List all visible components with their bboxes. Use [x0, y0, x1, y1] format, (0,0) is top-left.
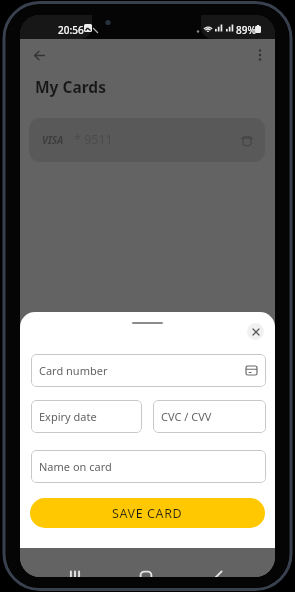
staticText: 20:56: [58, 23, 84, 37]
staticText: Card number: [39, 363, 108, 378]
button[interactable]: Back: [25, 41, 53, 69]
button[interactable]: CVC / CVV: [153, 400, 266, 433]
button[interactable]: Card number: [31, 354, 266, 387]
button[interactable]: Home: [133, 564, 159, 577]
staticText: 89%: [236, 23, 256, 37]
button[interactable]: Expiry date: [31, 400, 142, 433]
button[interactable]: SAVE CARD: [30, 498, 265, 528]
button[interactable]: More options: [246, 41, 274, 69]
button[interactable]: Delete card: [236, 129, 258, 151]
staticText: CVC / CVV: [161, 409, 212, 424]
staticText: SAVE CARD: [112, 505, 183, 522]
button[interactable]: Recent apps: [62, 564, 88, 577]
staticText: * 9511: [74, 131, 113, 148]
staticText: Name on card: [39, 459, 112, 474]
button[interactable]: Name on card: [31, 450, 266, 483]
staticText: VISA: [42, 133, 64, 147]
button[interactable]: Close: [247, 323, 264, 340]
staticText: Expiry date: [39, 409, 97, 424]
button[interactable]: Back: [205, 564, 231, 577]
staticText: My Cards: [35, 76, 106, 97]
